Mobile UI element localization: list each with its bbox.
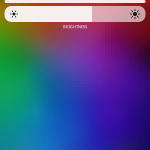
button[interactable]: Brightness — [4, 6, 145, 22]
staticText: BRIGHTNESS — [63, 24, 87, 29]
button[interactable]: Airplane Mode — [4, 0, 145, 3]
